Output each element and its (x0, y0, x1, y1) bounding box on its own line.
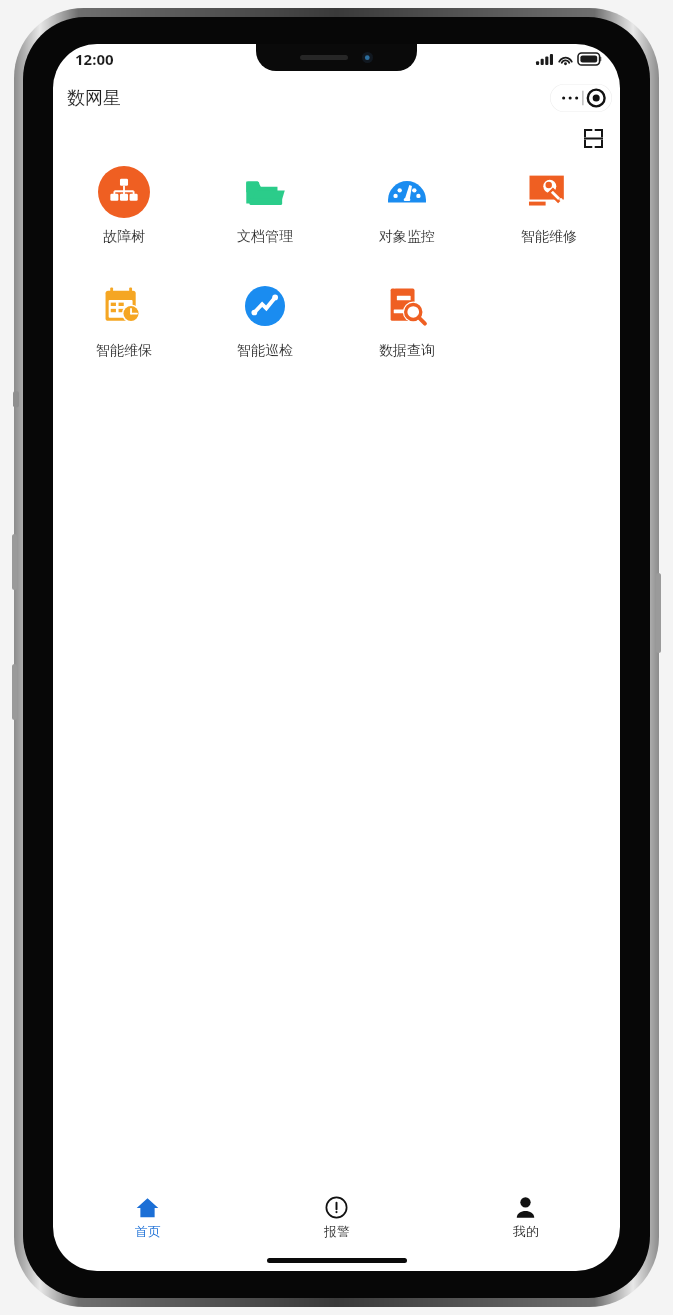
staticText: 故障树 (103, 228, 145, 246)
button[interactable]: 数据查询 (336, 274, 478, 366)
staticText: 12:00 (75, 49, 114, 69)
staticText: 数网星 (67, 87, 121, 110)
staticText: 报警 (324, 1223, 350, 1239)
staticText: 文档管理 (237, 228, 293, 246)
button[interactable]: 故障树 (53, 160, 194, 252)
staticText: 智能维保 (96, 342, 152, 360)
staticText: 智能巡检 (237, 342, 293, 360)
button[interactable]: 报警 (242, 1185, 431, 1249)
button[interactable]: 智能维修 (478, 160, 620, 252)
button[interactable]: 文档管理 (194, 160, 336, 252)
button[interactable]: 首页 (53, 1185, 242, 1249)
staticText: 我的 (513, 1223, 539, 1239)
button[interactable]: 智能巡检 (194, 274, 336, 366)
button[interactable]: 对象监控 (336, 160, 478, 252)
staticText: 智能维修 (521, 228, 577, 246)
staticText: 首页 (135, 1223, 161, 1239)
staticText: 数据查询 (379, 342, 435, 360)
button[interactable]: 我的 (431, 1185, 620, 1249)
button[interactable]: 智能维保 (53, 274, 194, 366)
button[interactable]: Mini program menu (550, 84, 612, 112)
button[interactable]: Scan QR code (578, 123, 608, 153)
staticText: 对象监控 (379, 228, 435, 246)
